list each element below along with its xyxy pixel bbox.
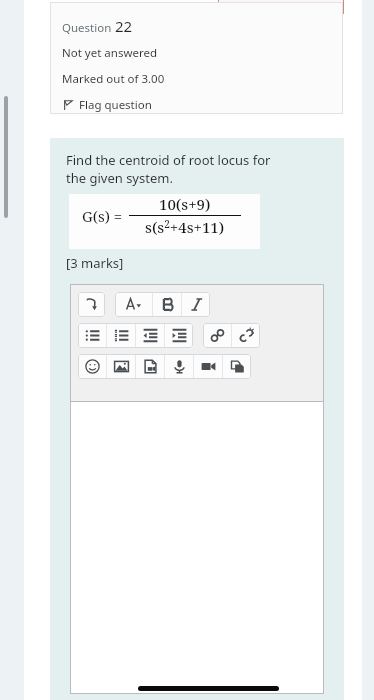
button[interactable] — [70, 402, 324, 694]
button[interactable]: Insert link — [203, 323, 231, 348]
staticText: Find the centroid of root locus for — [66, 151, 271, 169]
button[interactable]: Insert file — [136, 354, 164, 379]
button[interactable]: Font — [115, 292, 152, 317]
button[interactable]: Bold — [153, 292, 181, 317]
staticText: the given system. — [66, 169, 173, 187]
staticText: G(s) = — [82, 206, 123, 226]
staticText: 22 — [115, 16, 133, 36]
button[interactable]: Bullet list — [78, 323, 106, 348]
button[interactable]: Remove link — [232, 323, 260, 348]
staticText: [3 marks] — [66, 254, 124, 272]
staticText: Flag question — [79, 97, 152, 113]
button[interactable]: Flag question — [62, 97, 152, 113]
button[interactable]: Insert image — [107, 354, 135, 379]
staticText: 10(s+9) — [159, 194, 211, 214]
button[interactable]: Italic — [182, 292, 210, 317]
button[interactable]: Indent — [165, 323, 193, 348]
button[interactable]: Manage files — [223, 354, 251, 379]
button[interactable]: Record audio — [165, 354, 193, 379]
button[interactable]: Outdent — [136, 323, 164, 348]
staticText: s(s2+4s+11) — [145, 217, 225, 237]
button[interactable]: Undo — [78, 292, 105, 317]
button[interactable] — [218, 0, 344, 14]
button[interactable]: Numbered list — [107, 323, 135, 348]
button[interactable]: Record video — [194, 354, 222, 379]
button[interactable]: Emoji — [78, 354, 106, 379]
staticText: Question — [62, 20, 115, 36]
staticText: Not yet answered — [62, 45, 158, 61]
staticText: Marked out of 3.00 — [62, 71, 165, 87]
